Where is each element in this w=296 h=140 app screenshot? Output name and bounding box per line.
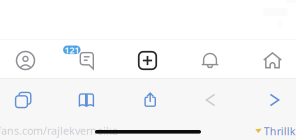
button[interactable]: Profile (0, 41, 55, 79)
button[interactable]: Tabs (0, 81, 53, 119)
staticText: 121 (64, 44, 79, 56)
button[interactable]: New post (118, 41, 177, 79)
button[interactable]: Home (243, 41, 296, 79)
staticText: Thrillky (264, 124, 296, 138)
button[interactable]: Back (181, 81, 240, 119)
button[interactable]: Bookmarks (57, 81, 116, 119)
button[interactable]: Direct messages (57, 41, 116, 79)
button[interactable]: Forward (245, 81, 296, 119)
button[interactable]: Activity (180, 41, 239, 79)
staticText: onlyfans.com/rajlekvernoika (0, 123, 118, 138)
button[interactable]: Share (121, 81, 180, 119)
